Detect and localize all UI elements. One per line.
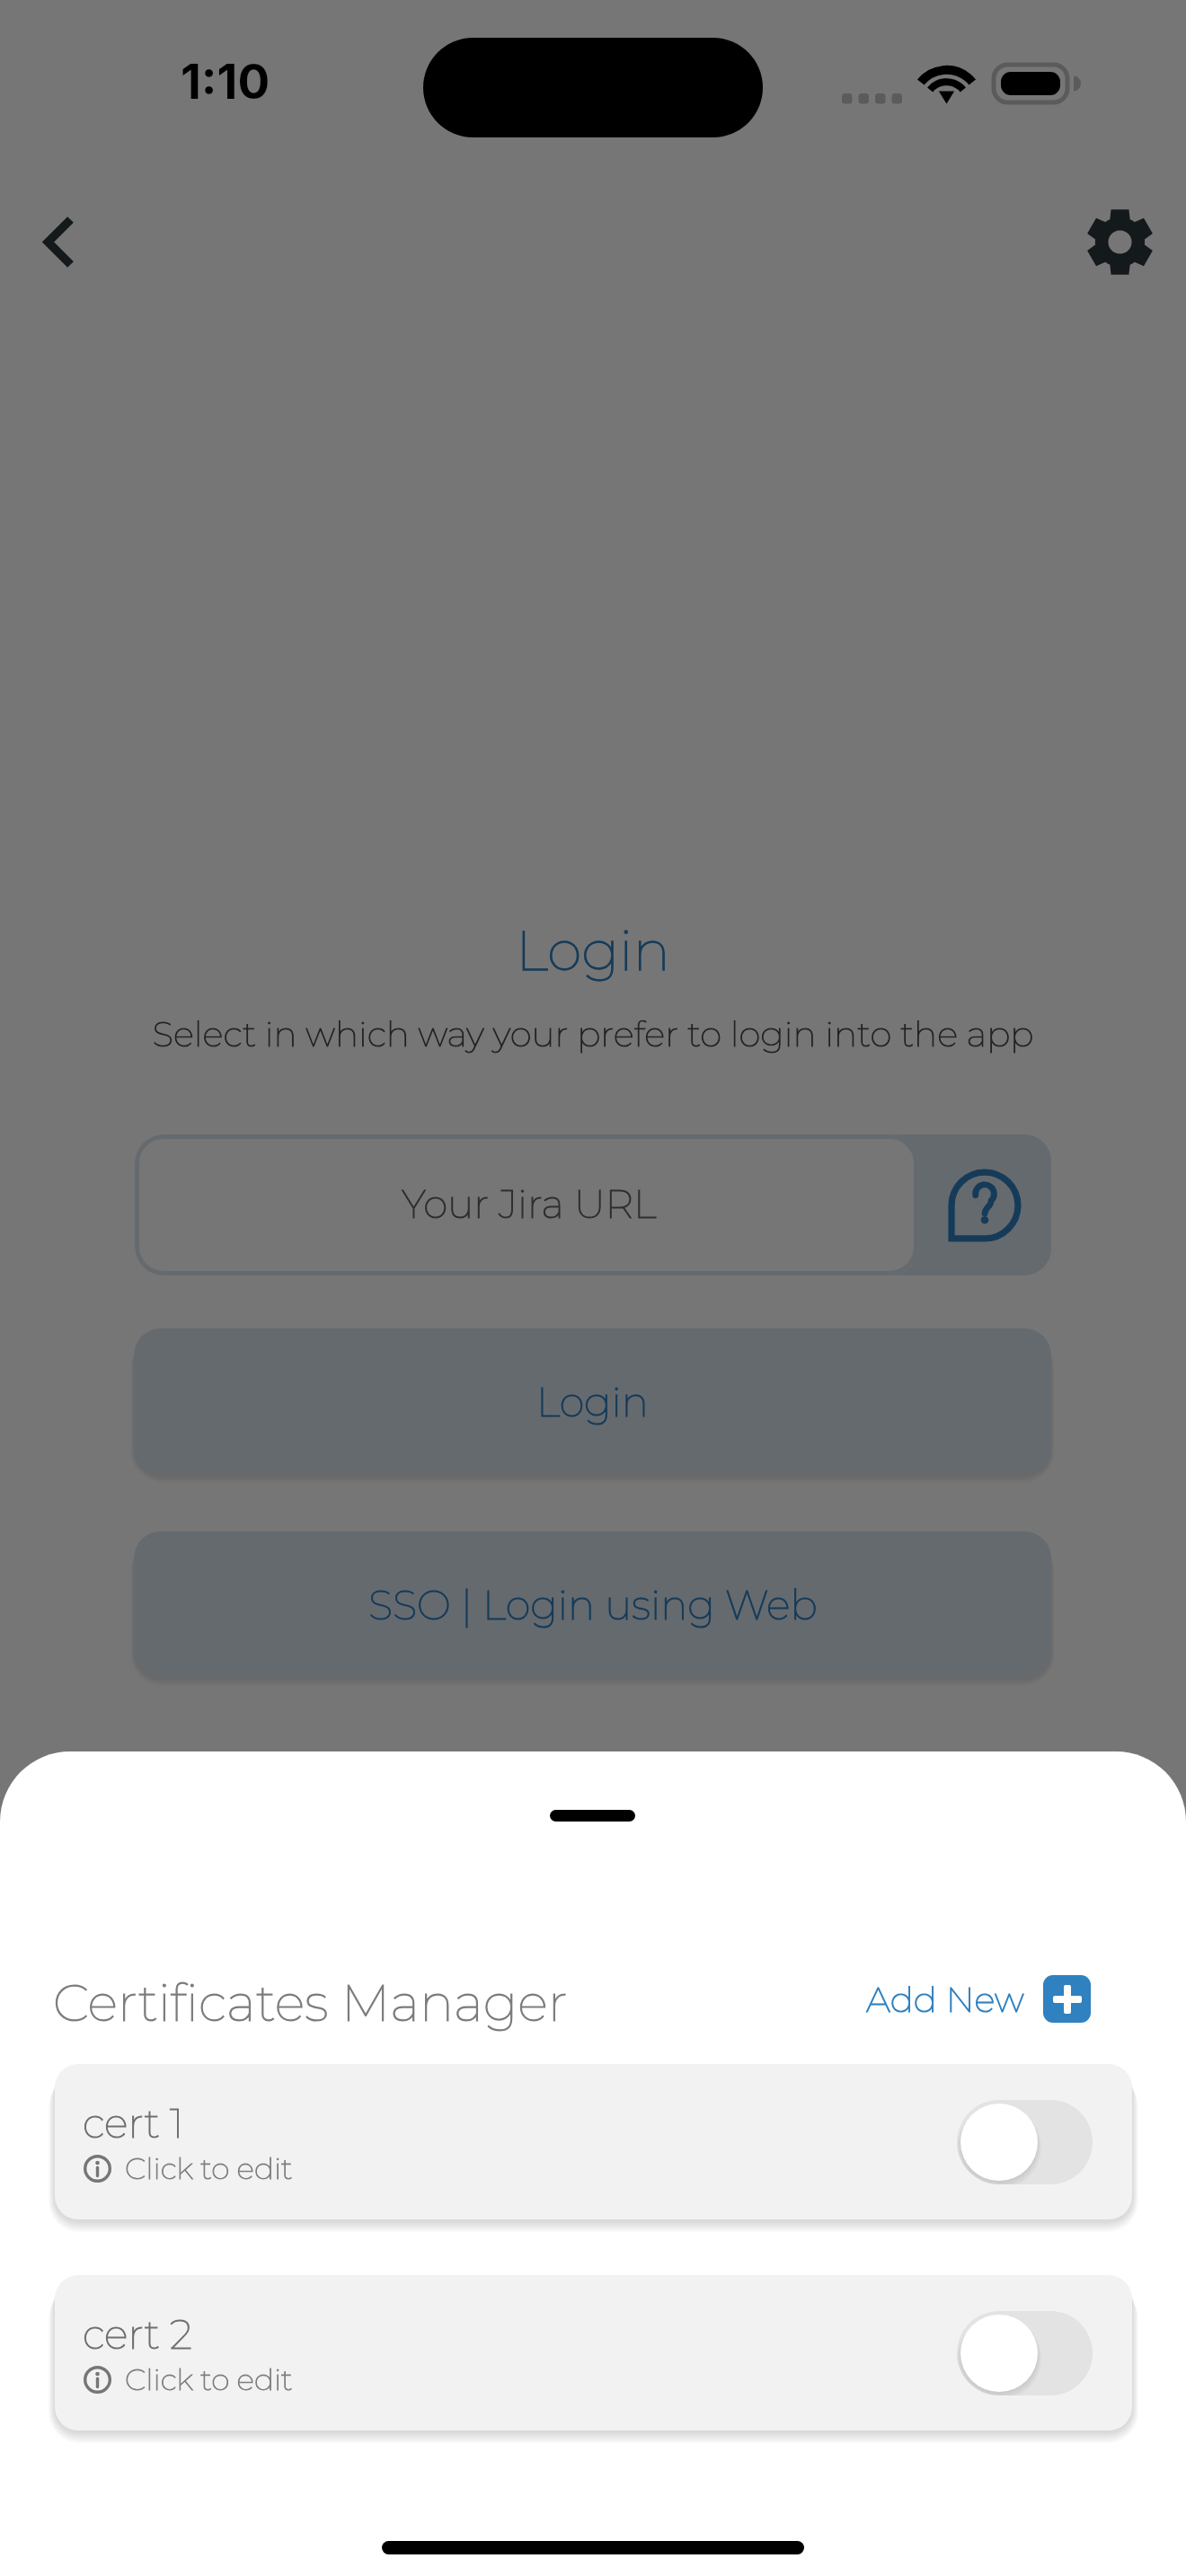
staticText: Certificates Manager <box>53 1972 568 2033</box>
staticText: Add New <box>866 1978 1024 2021</box>
staticText: Click to edit <box>125 2361 293 2397</box>
staticText: cert 2 <box>83 2309 193 2359</box>
button[interactable]: Your Jira URL <box>135 1134 918 1275</box>
button[interactable]: SSO login using web <box>134 1531 1051 1677</box>
button[interactable]: cert 2 <box>55 2275 1132 2430</box>
button[interactable]: Settings <box>1066 188 1174 296</box>
staticText: cert 1 <box>83 2098 184 2148</box>
staticText: 1:10 <box>181 53 270 110</box>
staticText: Click to edit <box>125 2150 293 2186</box>
staticText: Select in which way your prefer to login… <box>0 1012 1186 1055</box>
staticText: cert 2 <box>83 2309 193 2359</box>
button[interactable]: Toggle cert 2 <box>957 2311 1093 2395</box>
staticText: Select in which way your prefer to login… <box>0 1012 1186 1055</box>
staticText: Login <box>536 1377 649 1426</box>
button[interactable]: cert 1 <box>55 2064 1132 2219</box>
button[interactable]: Login sheet <box>134 1328 1051 1474</box>
staticText: SSO | Login using Web <box>368 1580 818 1629</box>
button[interactable]: Toggle cert 1 <box>957 2100 1093 2184</box>
staticText: Your Jira URL <box>402 1179 657 1228</box>
staticText: Add New <box>866 1978 1024 2021</box>
staticText: Login <box>0 916 1186 984</box>
button[interactable]: Add New <box>866 1975 1091 2023</box>
staticText: Certificates Manager <box>53 1972 568 2033</box>
button[interactable]: Help <box>854 1134 1051 1275</box>
staticText: Click to edit <box>125 2361 293 2397</box>
staticText: cert 1 <box>83 2098 184 2148</box>
staticText: Login <box>536 1377 649 1426</box>
staticText: Your Jira URL <box>402 1179 657 1228</box>
button[interactable]: Back <box>9 184 117 301</box>
staticText: SSO | Login using Web <box>368 1580 818 1629</box>
staticText: Login <box>0 916 1186 984</box>
staticText: Click to edit <box>125 2150 293 2186</box>
